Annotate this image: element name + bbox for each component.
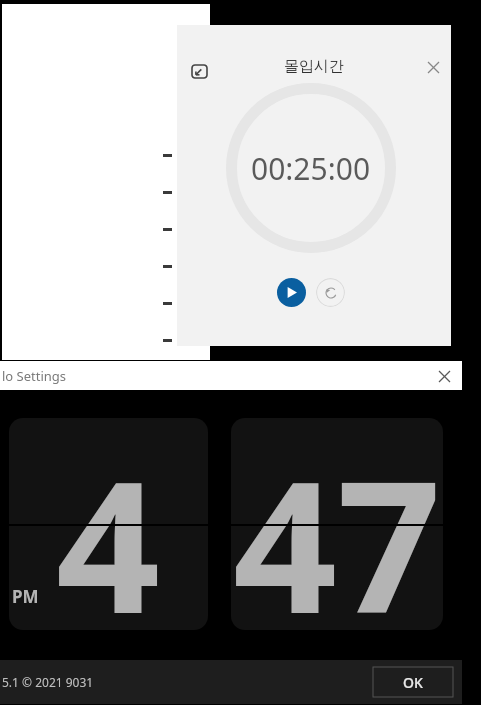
button[interactable]: OK [373,667,453,697]
staticText: 47 [233,418,442,630]
button[interactable]: 47 [231,418,443,630]
button[interactable]: Start [277,278,306,307]
staticText: OK [403,673,423,692]
staticText: 4 [56,418,161,630]
staticText: PM [12,585,39,608]
button[interactable]: Close settings [432,364,456,388]
button[interactable]: Close [417,51,449,83]
button[interactable]: Picture in picture [183,55,215,87]
staticText: 00:25:00 [251,148,371,189]
staticText: 몰입시간 [284,57,344,76]
staticText: 5.1 © 2021 9031 [2,674,94,690]
staticText: lo Settings [2,367,67,385]
button[interactable]: 4 [9,418,208,630]
button[interactable]: Reset [316,278,345,307]
